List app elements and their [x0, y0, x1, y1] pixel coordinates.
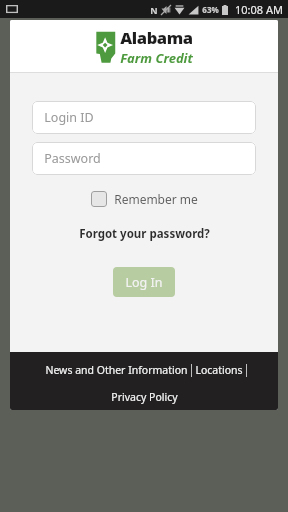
button[interactable]: Log In [113, 267, 175, 297]
staticText: Farm Credit [120, 49, 193, 67]
button[interactable]: Locations [192, 361, 246, 379]
button[interactable]: Forgot your password? [73, 223, 216, 245]
button[interactable]: Login ID [32, 101, 256, 134]
staticText: N [150, 4, 158, 16]
staticText: Locations [195, 363, 243, 377]
button[interactable]: Privacy Policy [107, 388, 182, 406]
staticText: Alabama [120, 26, 193, 48]
staticText: Privacy Policy [111, 390, 178, 404]
staticText: Log In [125, 274, 163, 291]
staticText: Password [44, 150, 101, 167]
staticText: 10:08 AM [235, 2, 283, 17]
button[interactable]: Password [32, 142, 256, 175]
staticText: News and Other Information [45, 363, 188, 377]
staticText: Login ID [44, 109, 94, 126]
staticText: Forgot your password? [79, 226, 210, 242]
staticText: Remember me [114, 191, 198, 207]
button[interactable]: Remember me [87, 189, 202, 209]
staticText: 63% [202, 4, 219, 15]
button[interactable]: News and Other Information [42, 361, 191, 379]
